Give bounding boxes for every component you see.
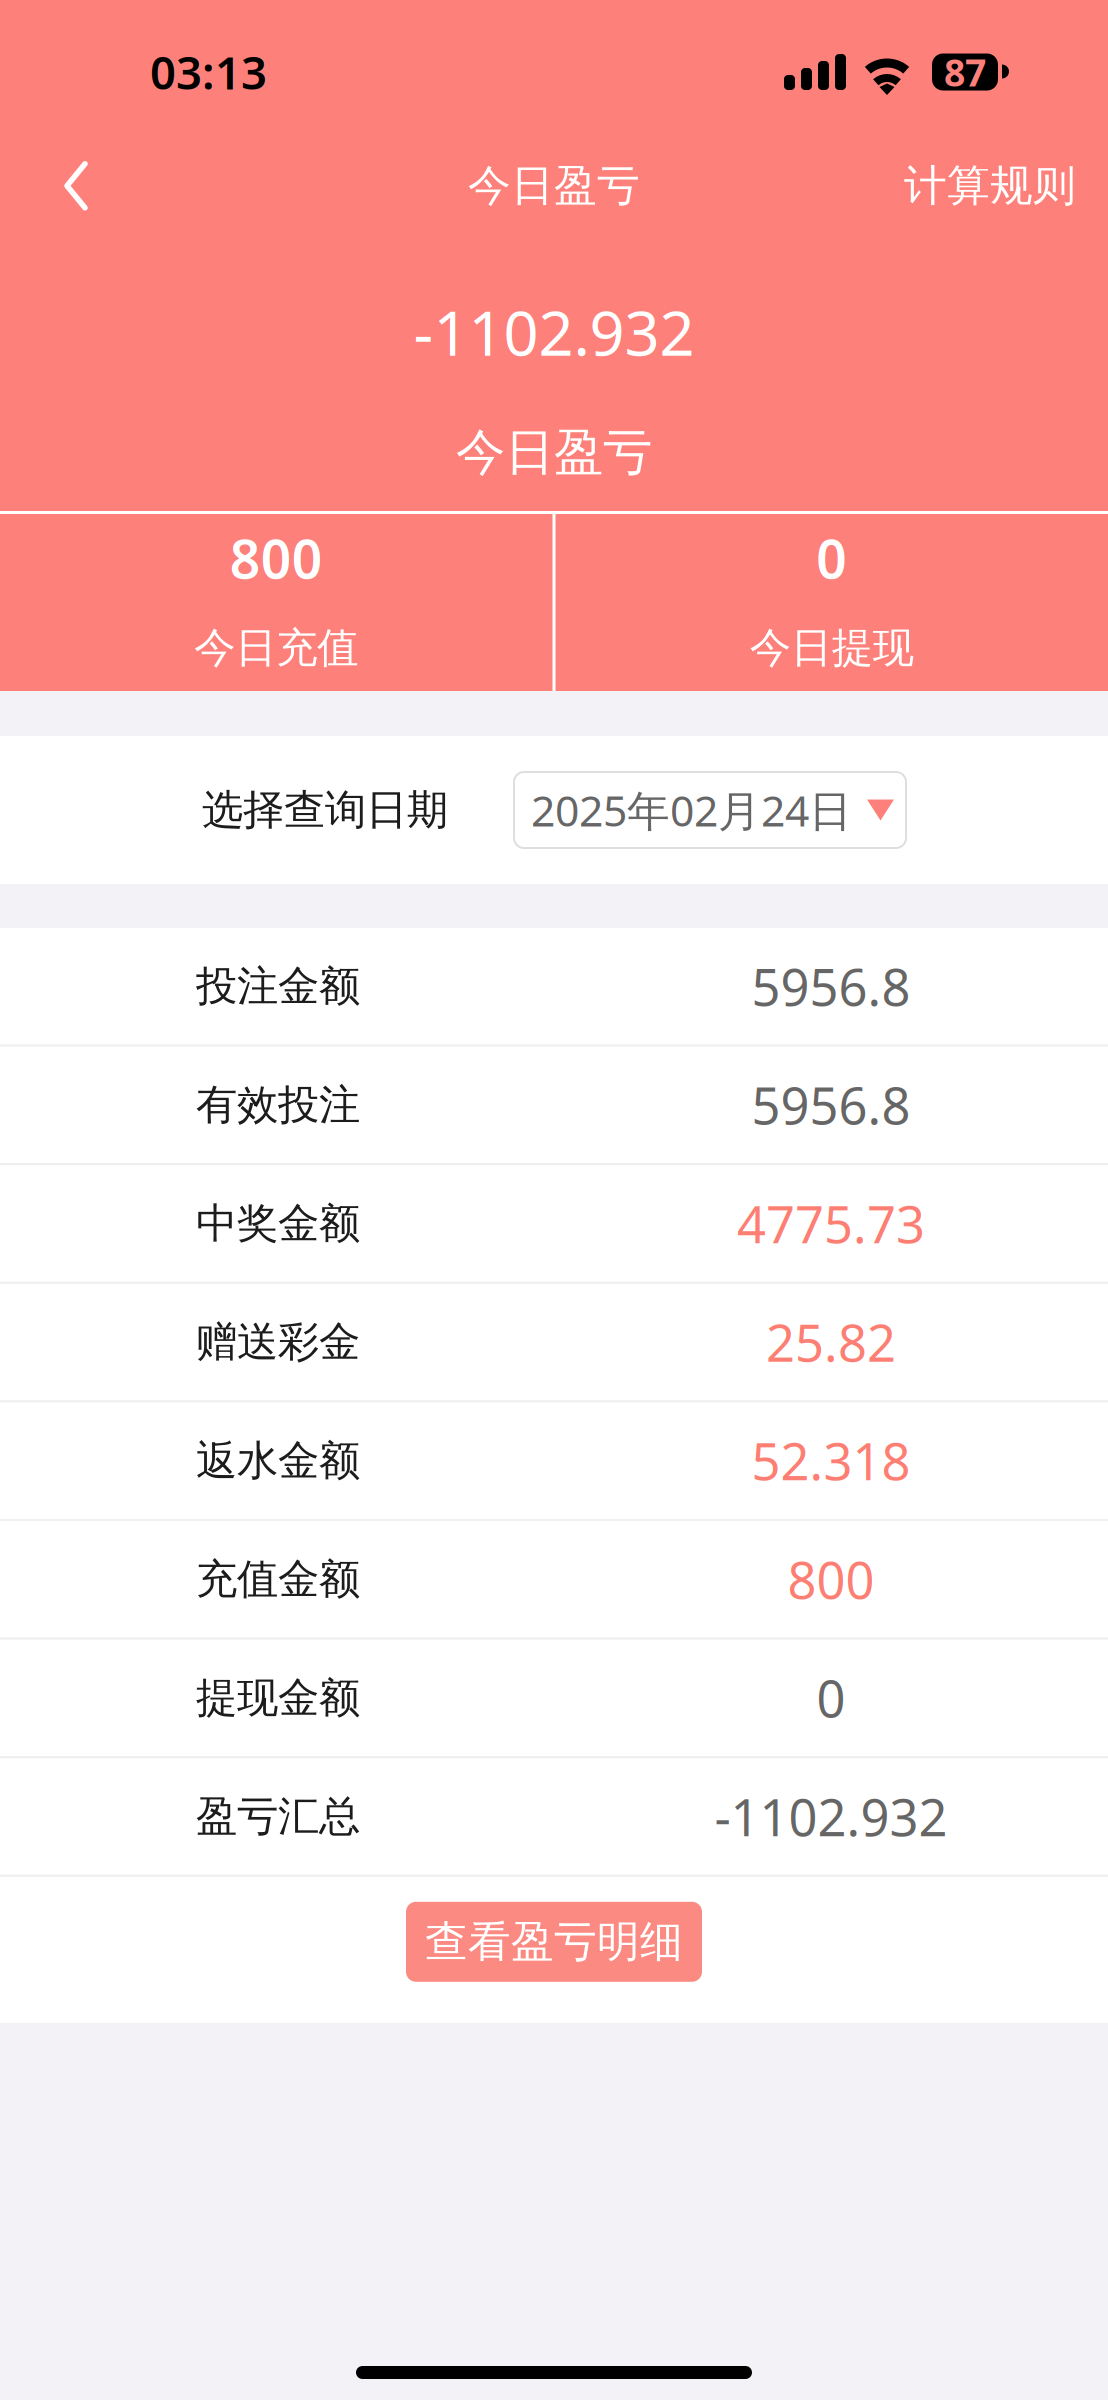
button[interactable]: 2025年02月24日 (514, 772, 906, 848)
staticText: 52.318 (751, 1427, 910, 1494)
button[interactable]: 计算规则 (868, 135, 1108, 237)
staticText: 03:13 (150, 42, 267, 102)
staticText: 查看盈亏明细 (425, 1916, 683, 1968)
staticText: 800 (230, 523, 323, 593)
staticText: 中奖金额 (196, 1198, 360, 1249)
staticText: 选择查询日期 (202, 785, 448, 835)
button[interactable]: 查看盈亏明细 (406, 1902, 702, 1982)
staticText: 提现金额 (196, 1672, 360, 1723)
staticText: 5956.8 (751, 1071, 910, 1139)
staticText: 5956.8 (751, 953, 910, 1020)
staticText: 4775.73 (737, 1190, 925, 1257)
staticText: 投注金额 (196, 961, 360, 1012)
button[interactable]: 返回 (0, 136, 126, 236)
staticText: 今日提现 (750, 623, 914, 673)
staticText: 0 (816, 1664, 845, 1732)
staticText: -1102.932 (413, 291, 694, 373)
staticText: 87 (944, 47, 986, 97)
staticText: 返水金额 (196, 1435, 360, 1486)
staticText: 充值金额 (196, 1554, 360, 1605)
staticText: -1102.932 (714, 1783, 947, 1850)
staticText: 800 (787, 1546, 874, 1613)
staticText: 赠送彩金 (196, 1317, 360, 1367)
staticText: 2025年02月24日 (531, 782, 852, 838)
staticText: 0 (816, 523, 847, 593)
staticText: 今日盈亏 (456, 422, 652, 483)
staticText: 有效投注 (196, 1079, 360, 1130)
staticText: 今日充值 (194, 623, 358, 673)
staticText: 盈亏汇总 (196, 1791, 360, 1842)
staticText: 计算规则 (904, 160, 1076, 212)
staticText: 今日盈亏 (468, 160, 640, 212)
staticText: 25.82 (766, 1308, 896, 1376)
